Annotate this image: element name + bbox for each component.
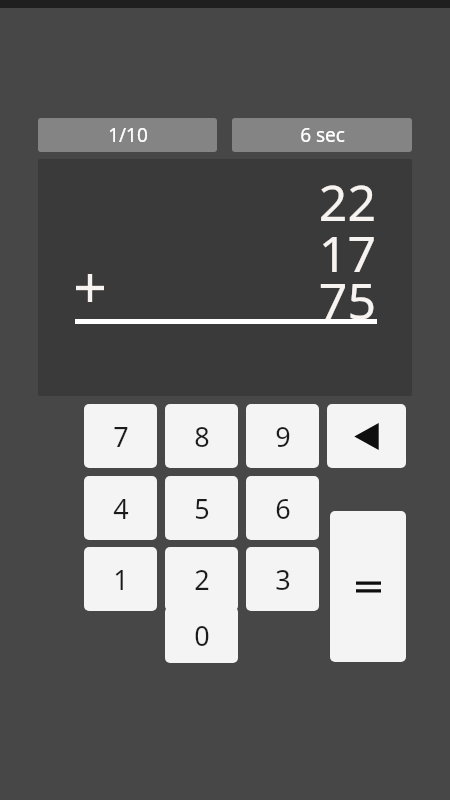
staticText: 6 sec [300,122,345,148]
staticText: 5 [194,490,210,527]
button[interactable]: 6 [246,476,319,540]
staticText: 4 [113,490,129,527]
staticText: 1/10 [108,122,148,148]
staticText: 7 [113,418,129,455]
staticText: 2 [194,561,210,598]
staticText: 75 [318,266,376,334]
button[interactable]: 8 [165,404,238,468]
staticText: 0 [194,617,210,654]
button[interactable]: 1/10 [38,118,217,152]
button[interactable]: 1 [84,547,157,611]
staticText: 22 [318,168,376,236]
button[interactable]: 3 [246,547,319,611]
button[interactable]: Equals [330,511,406,662]
staticText: 9 [275,418,291,455]
button[interactable]: 7 [84,404,157,468]
button[interactable]: 4 [84,476,157,540]
staticText: 8 [194,418,210,455]
button[interactable]: 2 [165,547,238,611]
staticText: 3 [275,561,291,598]
staticText: 1 [113,561,129,598]
button[interactable]: 5 [165,476,238,540]
button[interactable]: Backspace [327,404,406,468]
staticText: 6 [275,490,291,527]
button[interactable]: 6 sec [232,118,412,152]
button[interactable]: 0 [165,607,238,663]
button[interactable]: 9 [246,404,319,468]
staticText: 17 [318,219,376,287]
